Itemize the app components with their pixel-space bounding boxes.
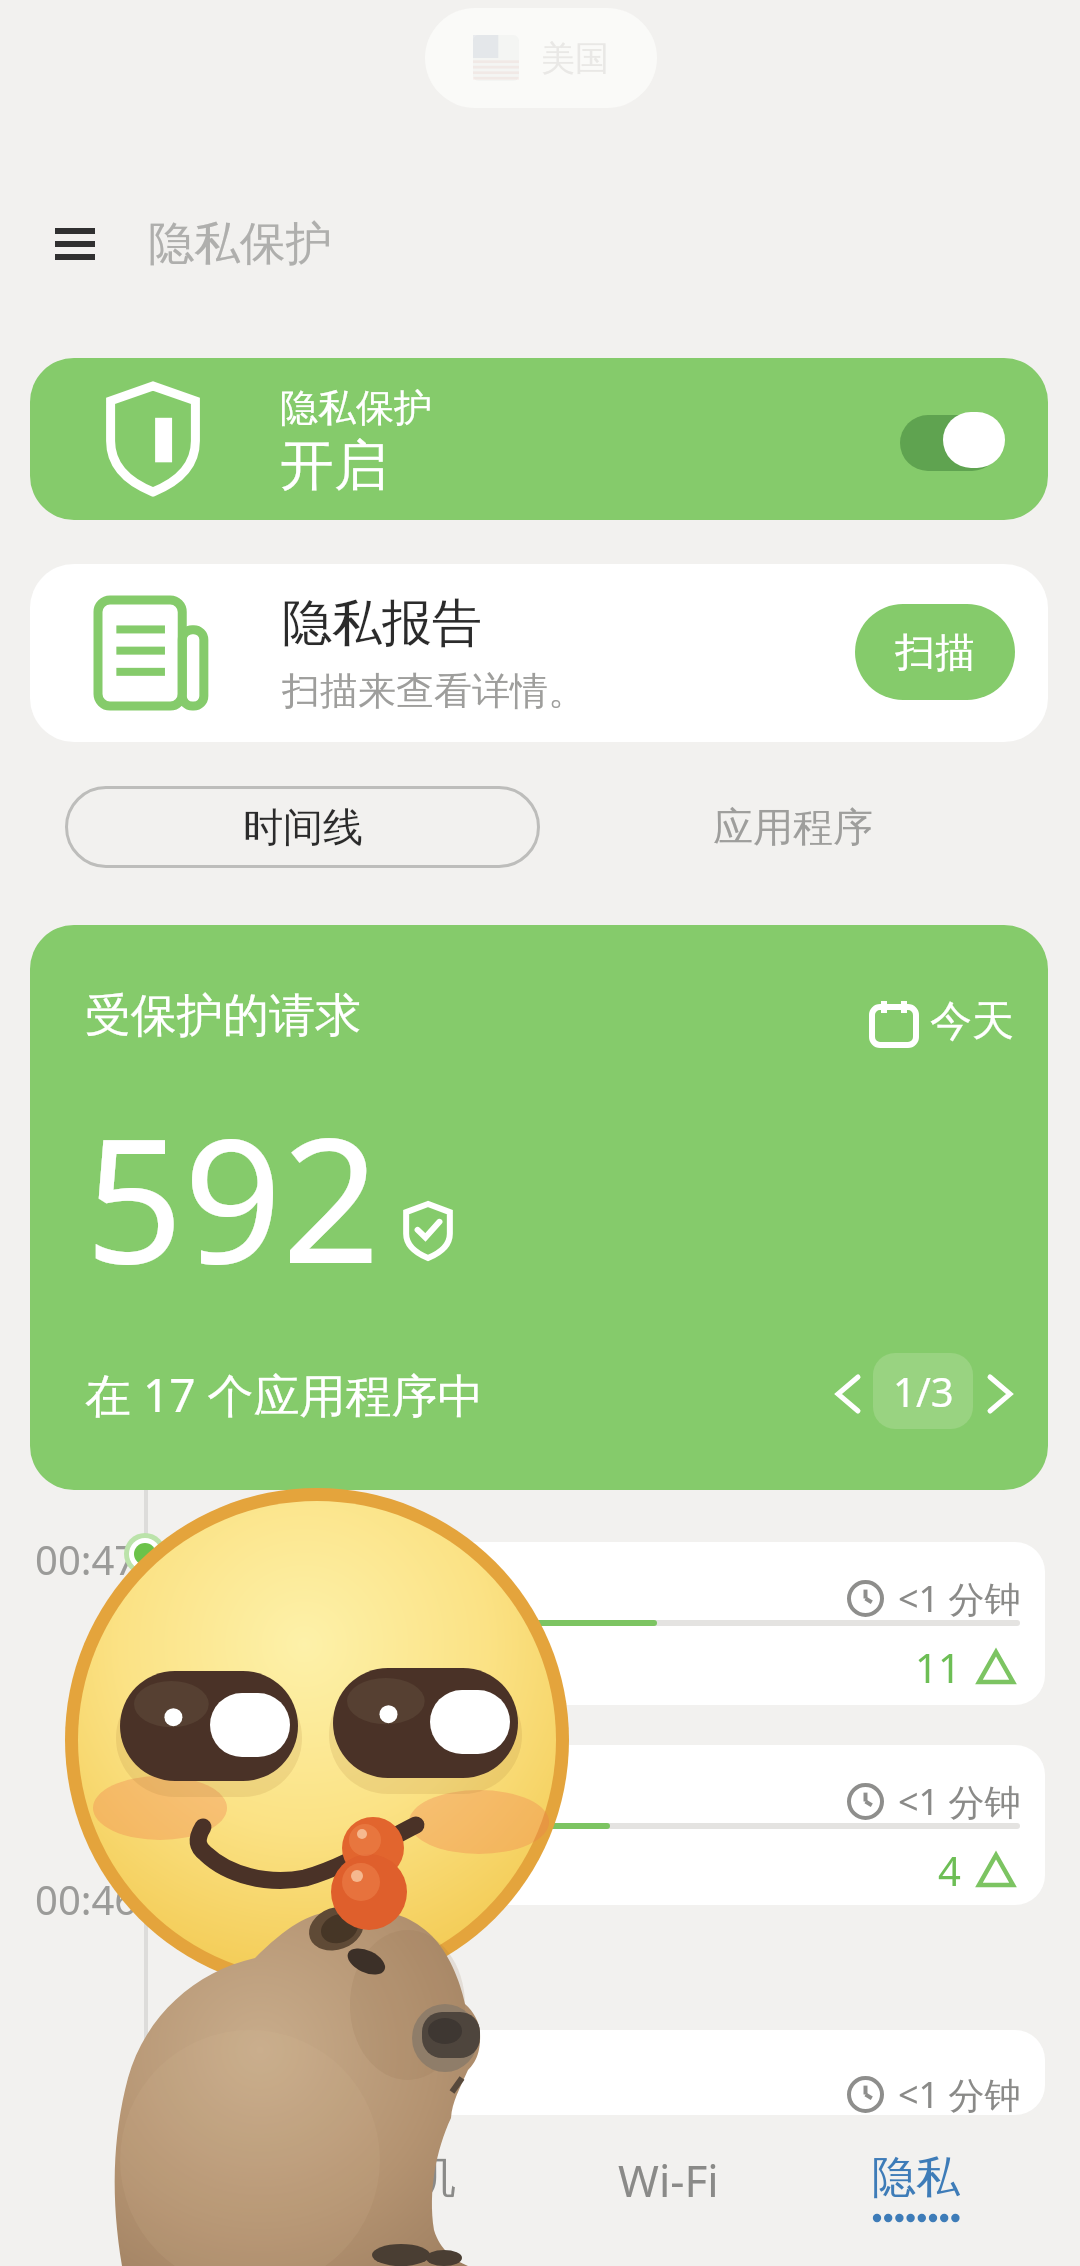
- staticText: 4: [938, 1843, 961, 1897]
- staticText: 受保护的请求: [85, 987, 361, 1045]
- button[interactable]: [900, 415, 1000, 471]
- staticText: 11: [915, 1640, 961, 1694]
- staticText: 隐私保护: [280, 384, 432, 432]
- button[interactable]: <1 分钟: [170, 1745, 1045, 1905]
- button[interactable]: Wi-Fi: [618, 2150, 719, 2210]
- staticText: 在 17 个应用程序中: [85, 1363, 484, 1426]
- button[interactable]: 手机: [368, 2150, 456, 2205]
- button[interactable]: 应用程序: [555, 786, 1030, 868]
- button[interactable]: 受保护的请求: [30, 925, 1048, 1490]
- staticText: 00:47: [35, 1532, 138, 1586]
- staticText: <1 分钟: [898, 1574, 1021, 1623]
- button[interactable]: 美国: [425, 8, 657, 108]
- staticText: 隐私: [872, 2150, 960, 2205]
- staticText: 美国: [541, 37, 609, 80]
- button[interactable]: 时间线: [65, 786, 540, 868]
- button[interactable]: <1 分钟: [170, 2030, 1045, 2115]
- staticText: 扫描来查看详情。: [282, 667, 586, 715]
- staticText: 1/3: [893, 1364, 954, 1418]
- button[interactable]: 隐私: [872, 2150, 960, 2223]
- button[interactable]: 隐私报告: [30, 564, 1048, 742]
- button[interactable]: 隐私保护: [30, 358, 1048, 520]
- staticText: 开启: [280, 432, 388, 500]
- staticText: 今天: [930, 995, 1014, 1048]
- staticText: <1 分钟: [898, 2070, 1021, 2119]
- staticText: 隐私报告: [282, 592, 482, 655]
- button[interactable]: <1 分钟: [170, 1542, 1045, 1705]
- staticText: 扫描: [895, 627, 975, 677]
- staticText: 592: [85, 1079, 381, 1313]
- staticText: 时间线: [243, 802, 363, 852]
- staticText: 00:46: [35, 1872, 138, 1926]
- staticText: <1 分钟: [898, 1777, 1021, 1826]
- staticText: 隐私保护: [148, 215, 332, 273]
- button[interactable]: 扫描: [855, 604, 1015, 700]
- staticText: 应用程序: [713, 802, 873, 852]
